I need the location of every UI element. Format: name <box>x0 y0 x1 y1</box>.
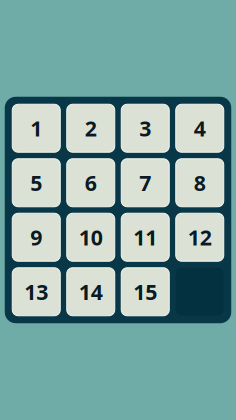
staticText: 11 <box>133 223 157 251</box>
button[interactable]: 9 <box>12 213 60 261</box>
staticText: 13 <box>24 278 48 306</box>
button[interactable]: 13 <box>12 268 60 316</box>
staticText: 4 <box>194 114 206 142</box>
staticText: 12 <box>188 223 212 251</box>
staticText: 6 <box>85 169 97 197</box>
button[interactable]: 6 <box>67 159 115 207</box>
button[interactable]: 2 <box>67 104 115 152</box>
staticText: 5 <box>30 169 42 197</box>
staticText: 2 <box>85 114 97 142</box>
button[interactable]: 3 <box>121 104 169 152</box>
staticText: 3 <box>139 114 151 142</box>
button[interactable]: 15 <box>121 268 169 316</box>
staticText: 9 <box>30 223 42 251</box>
button[interactable]: 10 <box>67 213 115 261</box>
button[interactable]: 5 <box>12 159 60 207</box>
staticText: 8 <box>194 169 206 197</box>
staticText: 14 <box>79 278 103 306</box>
staticText: 10 <box>79 223 103 251</box>
button[interactable]: 8 <box>176 159 224 207</box>
button[interactable]: 7 <box>121 159 169 207</box>
button[interactable]: 1 <box>12 104 60 152</box>
button[interactable]: 14 <box>67 268 115 316</box>
staticText: 15 <box>133 278 157 306</box>
button[interactable]: 12 <box>176 213 224 261</box>
button[interactable]: 4 <box>176 104 224 152</box>
staticText: 1 <box>30 114 42 142</box>
button[interactable]: 11 <box>121 213 169 261</box>
staticText: 7 <box>139 169 151 197</box>
